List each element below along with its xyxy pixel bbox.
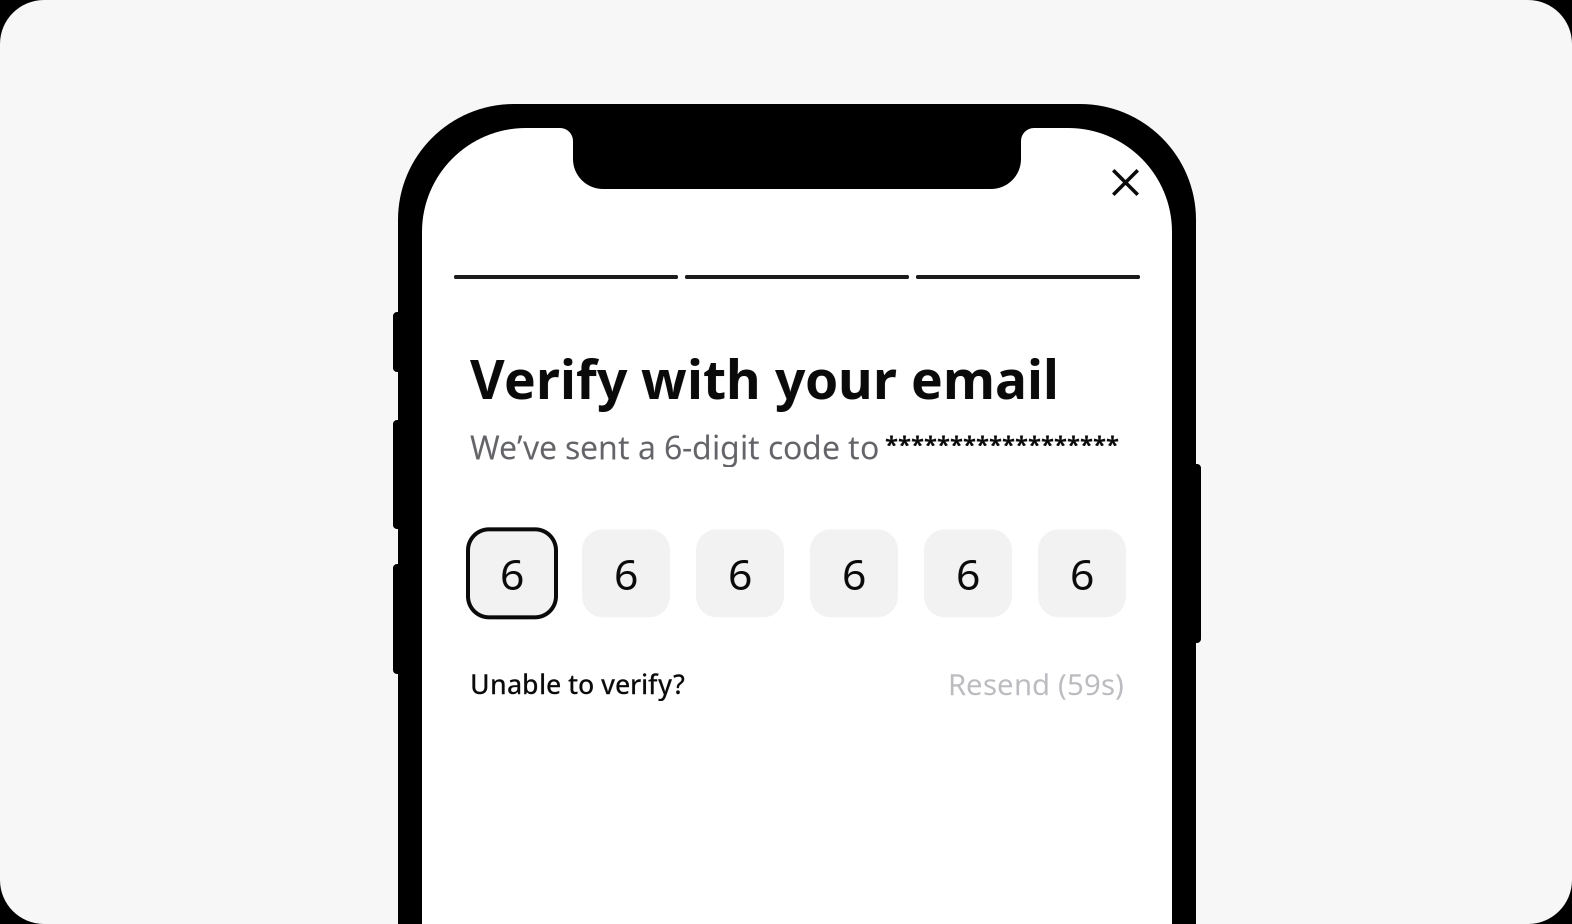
button[interactable]: 6 — [1038, 529, 1126, 617]
button[interactable]: 6 — [468, 529, 556, 617]
staticText: We’ve sent a 6-digit code to — [470, 426, 879, 468]
staticText: Unable to verify? — [470, 666, 685, 701]
button[interactable]: 6 — [924, 529, 1012, 617]
button[interactable]: 6 — [810, 529, 898, 617]
staticText: 6 — [956, 545, 980, 602]
button[interactable]: Close — [1085, 155, 1140, 210]
staticText: 6 — [500, 545, 524, 602]
staticText: Verify with your email — [470, 343, 1059, 414]
staticText: 6 — [842, 545, 866, 602]
staticText: ****************** — [885, 428, 1119, 460]
staticText: 6 — [614, 545, 638, 602]
button[interactable]: Resend (59s) — [948, 664, 1124, 703]
button[interactable]: 6 — [582, 529, 670, 617]
staticText: Resend (59s) — [948, 664, 1124, 703]
staticText: 6 — [728, 545, 752, 602]
button[interactable]: 6 — [696, 529, 784, 617]
staticText: 6 — [1070, 545, 1094, 602]
button[interactable]: Unable to verify? — [470, 666, 685, 701]
